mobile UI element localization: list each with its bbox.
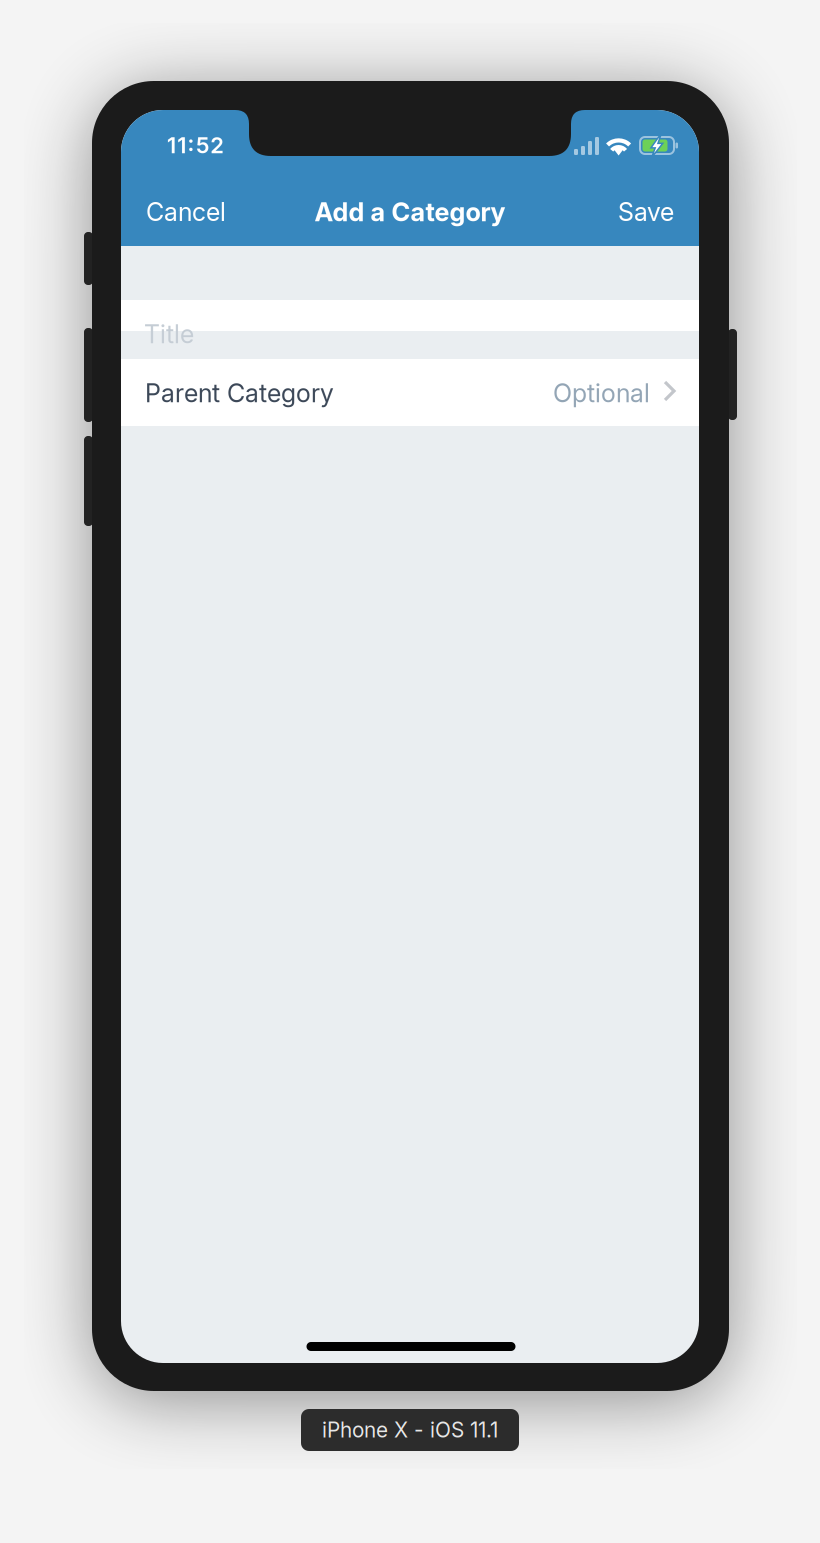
staticText: Cancel	[146, 197, 226, 227]
staticText: Parent Category	[145, 378, 334, 408]
staticText: Add a Category	[314, 197, 505, 227]
button[interactable]: Cancel	[146, 193, 276, 231]
button[interactable]: Save	[544, 193, 674, 231]
button[interactable]: Parent Category	[121, 359, 699, 426]
staticText: Save	[618, 197, 674, 227]
staticText: Optional	[553, 378, 650, 408]
staticText: 11:52	[167, 132, 224, 159]
staticText: Title	[144, 319, 194, 349]
staticText: iPhone X - iOS 11.1	[322, 1417, 498, 1443]
